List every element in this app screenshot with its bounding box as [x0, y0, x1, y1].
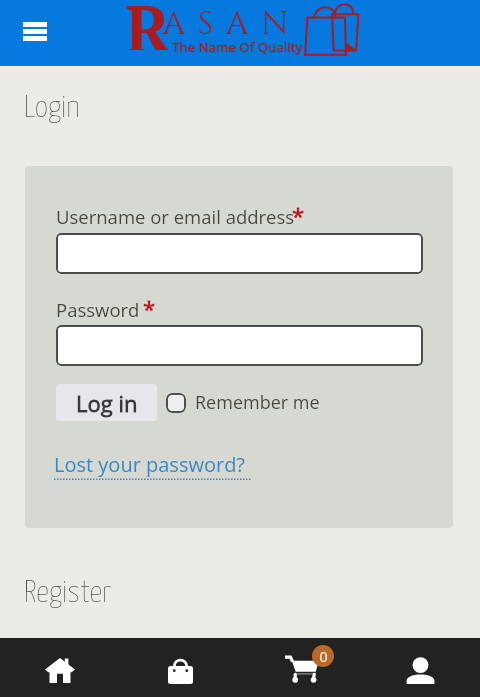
staticText: *: [292, 200, 305, 230]
button[interactable]: [56, 233, 423, 274]
button[interactable]: Account: [360, 638, 480, 697]
staticText: Login: [24, 93, 80, 123]
button[interactable]: Cart: [240, 638, 360, 697]
staticText: *: [143, 293, 156, 323]
staticText: Remember me: [195, 390, 320, 415]
staticText: Password: [56, 297, 140, 322]
staticText: Username or email address: [56, 204, 295, 229]
staticText: R: [125, 0, 172, 50]
button[interactable]: Shop: [120, 638, 240, 697]
button[interactable]: Menu: [12, 11, 56, 55]
staticText: The Name Of Quality: [172, 38, 303, 56]
button[interactable]: Lost your password?: [54, 451, 251, 481]
staticText: Register: [24, 578, 112, 608]
staticText: 0: [319, 647, 328, 666]
button[interactable]: Remember me: [166, 390, 320, 415]
staticText: ASAN: [162, 2, 301, 46]
button[interactable]: [56, 325, 423, 366]
staticText: Log in: [76, 388, 138, 418]
button[interactable]: Log in: [56, 384, 157, 421]
button[interactable]: Home: [0, 638, 120, 697]
staticText: Lost your password?: [54, 451, 245, 478]
